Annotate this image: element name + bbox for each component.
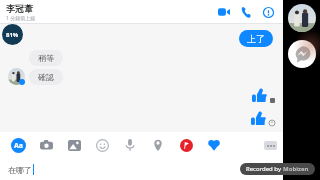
- button[interactable]: Games: [200, 132, 228, 158]
- button[interactable]: Stickers: [88, 132, 116, 158]
- button[interactable]: 確認: [29, 69, 63, 85]
- button[interactable]: 在哪了: [0, 158, 283, 180]
- button[interactable]: Text formatting: [4, 132, 32, 158]
- button[interactable]: Video call: [213, 1, 235, 23]
- button[interactable]: Flipagram: [172, 132, 200, 158]
- button[interactable]: 上了: [239, 30, 273, 47]
- button[interactable]: Voice message: [116, 132, 144, 158]
- staticText: 稍等: [38, 53, 54, 63]
- button[interactable]: Messenger chat head: [288, 40, 316, 68]
- button[interactable]: Photo gallery: [60, 132, 88, 158]
- button[interactable]: Voice call: [235, 1, 257, 23]
- button[interactable]: More: [264, 141, 277, 150]
- staticText: Recorded by: [246, 165, 283, 173]
- button[interactable]: Camera: [32, 132, 60, 158]
- staticText: Aa: [14, 141, 24, 151]
- button[interactable]: 稍等: [29, 50, 63, 66]
- staticText: 在哪了: [8, 165, 32, 175]
- button[interactable]: Battery 81 percent: [2, 24, 23, 45]
- staticText: 確認: [38, 72, 54, 82]
- button[interactable]: Send location: [144, 132, 172, 158]
- staticText: 1 分鐘前上線: [6, 15, 36, 22]
- button[interactable]: Conversation information: [257, 1, 279, 23]
- staticText: Mobizen: [283, 165, 309, 173]
- staticText: 81%: [6, 31, 19, 39]
- staticText: 上了: [247, 33, 265, 44]
- staticText: 李冠葦: [6, 3, 33, 14]
- button[interactable]: Contact avatar: [288, 4, 316, 32]
